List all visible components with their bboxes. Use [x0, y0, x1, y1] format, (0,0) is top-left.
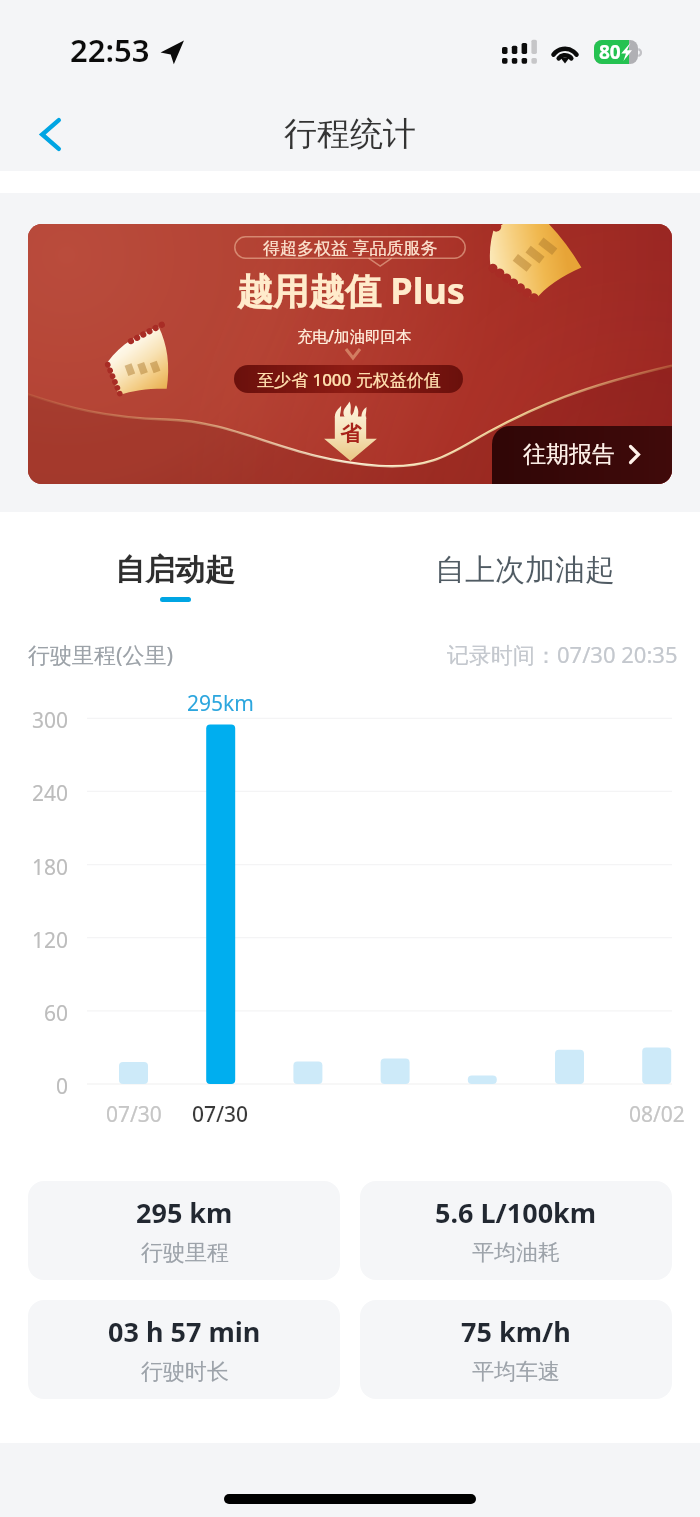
staticText: 省 — [340, 421, 361, 447]
button[interactable]: 5.6 L/100km — [360, 1181, 672, 1280]
staticText: 300 — [32, 706, 69, 735]
staticText: 08/02 — [629, 1100, 685, 1129]
staticText: 295 km — [136, 1194, 233, 1231]
button[interactable]: 自启动起 — [0, 551, 350, 602]
button[interactable]: 自上次加油起 — [350, 551, 700, 602]
staticText: 平均油耗 — [472, 1239, 560, 1267]
staticText: 60 — [44, 999, 69, 1028]
staticText: 得超多权益 享品质服务 — [263, 236, 438, 259]
staticText: 平均车速 — [472, 1358, 560, 1386]
button[interactable]: 295 km — [28, 1181, 340, 1280]
staticText: 03 h 57 min — [108, 1313, 261, 1350]
staticText: 120 — [32, 926, 69, 955]
staticText: 0 — [56, 1072, 69, 1101]
staticText: 记录时间：07/30 20:35 — [447, 639, 678, 669]
staticText: 5.6 L/100km — [435, 1194, 597, 1231]
staticText: 07/30 — [106, 1100, 162, 1129]
button[interactable]: 得超多权益 享品质服务 — [28, 224, 672, 484]
staticText: 行驶时长 — [141, 1358, 229, 1386]
button[interactable]: Back — [26, 110, 74, 158]
staticText: 往期报告 — [523, 440, 615, 469]
staticText: 行驶里程(公里) — [28, 639, 174, 669]
staticText: 行驶里程 — [141, 1239, 229, 1267]
staticText: 越用越值 Plus — [237, 266, 465, 315]
staticText: 75 km/h — [461, 1313, 571, 1350]
staticText: 自上次加油起 — [435, 551, 615, 589]
staticText: 80 — [599, 40, 621, 63]
staticText: 至少省 1000 元权益价值 — [257, 368, 441, 391]
staticText: 自启动起 — [115, 551, 235, 589]
button[interactable]: 75 km/h — [360, 1300, 672, 1399]
staticText: 295km — [187, 689, 254, 718]
button[interactable]: 03 h 57 min — [28, 1300, 340, 1399]
staticText: 180 — [32, 853, 69, 882]
staticText: 行程统计 — [284, 113, 416, 155]
staticText: 07/30 — [192, 1100, 249, 1129]
staticText: 充电/加油即回本 — [297, 325, 412, 346]
staticText: 22:53 — [70, 29, 150, 71]
staticText: 240 — [32, 779, 69, 808]
button[interactable]: 往期报告 — [492, 426, 672, 484]
